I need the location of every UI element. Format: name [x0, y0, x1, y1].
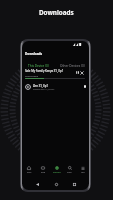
staticText: Home: [27, 171, 32, 173]
staticText: Sale My Family Kenya S1, Ep1: [25, 69, 64, 73]
staticText: Downloads: [25, 52, 43, 56]
button[interactable]: More options: [83, 84, 86, 88]
button[interactable]: Cancel download: [80, 71, 84, 75]
staticText: This Device (0): [28, 64, 49, 68]
staticText: Search: [67, 171, 72, 173]
staticText: Downloads: [53, 171, 61, 173]
button[interactable]: Pause download: [76, 71, 79, 74]
button[interactable]: Back: [34, 181, 40, 187]
button[interactable]: Home: [22, 163, 36, 176]
staticText: available until 17 Jul 2024: [33, 88, 55, 90]
button[interactable]: This Device (0): [22, 63, 55, 68]
staticText: Zen S1, Ep1: [33, 84, 49, 88]
button[interactable]: Other Devices (0): [55, 63, 89, 68]
button[interactable]: More: [76, 163, 89, 176]
button[interactable]: Guide: [36, 163, 50, 176]
staticText: Other Devices (0): [60, 64, 85, 68]
button[interactable]: Home: [53, 181, 59, 187]
button[interactable]: Search: [63, 163, 76, 176]
button[interactable]: Downloads: [50, 163, 63, 176]
staticText: Guide: [41, 171, 46, 173]
button[interactable]: Recent apps: [71, 181, 77, 187]
staticText: Downloading: [25, 75, 39, 78]
staticText: Downloads: [39, 8, 74, 17]
staticText: More: [81, 171, 85, 173]
